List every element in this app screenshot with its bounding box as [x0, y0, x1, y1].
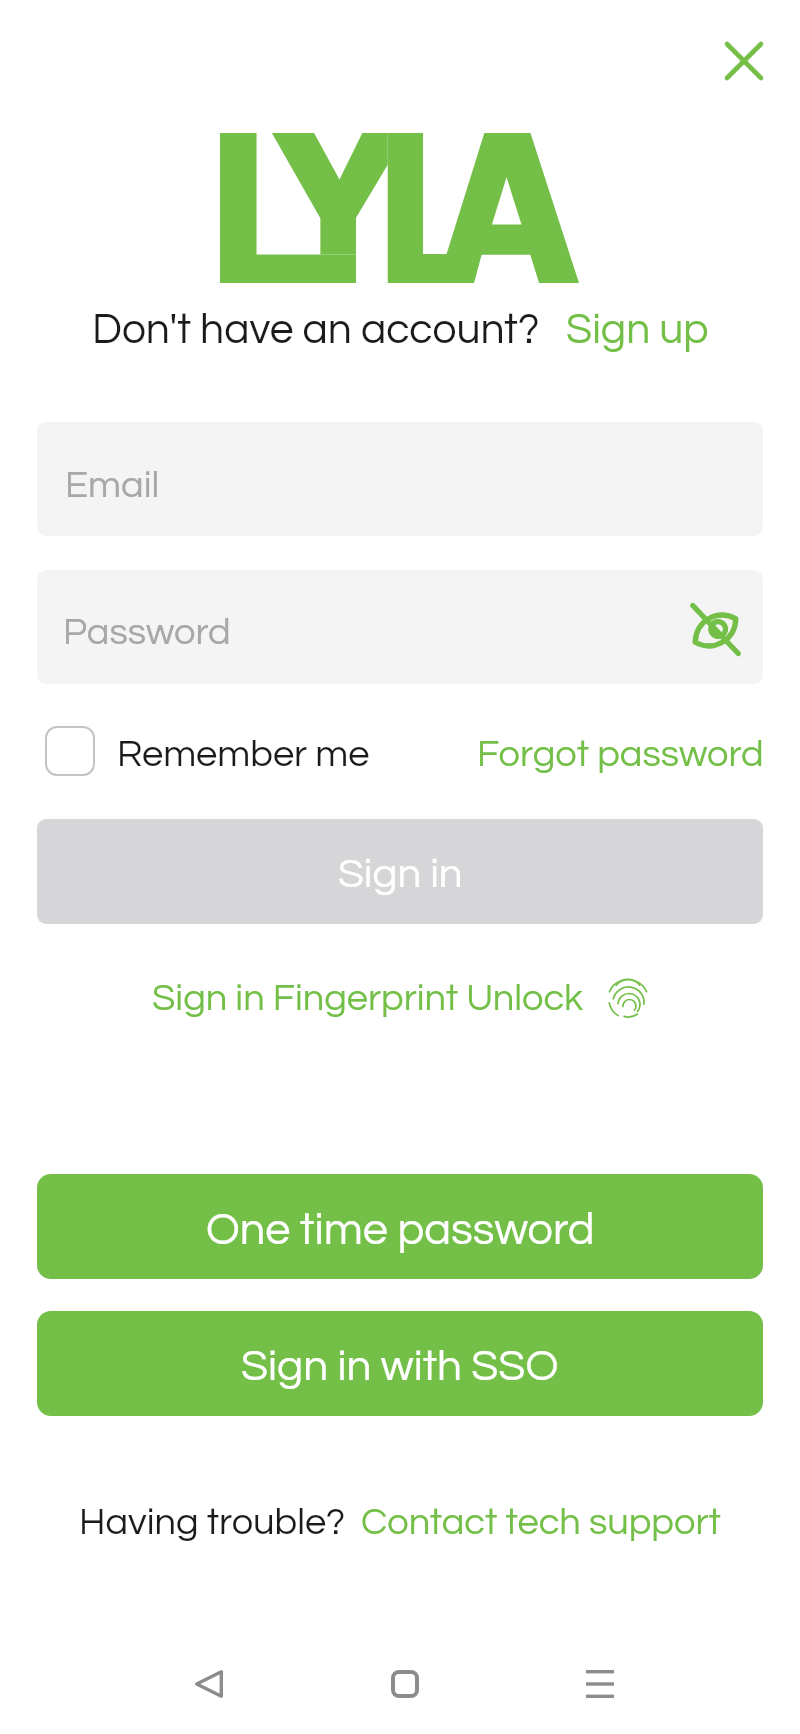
staticText: Email: [65, 466, 160, 505]
button[interactable]: Sign up: [566, 308, 709, 352]
button[interactable]: Back: [168, 1643, 249, 1724]
button[interactable]: Recent apps: [559, 1643, 640, 1724]
button[interactable]: Close: [704, 21, 784, 101]
button[interactable]: Email: [37, 422, 763, 536]
button[interactable]: Sign in with SSO: [37, 1311, 763, 1416]
staticText: Don't have an account?: [92, 308, 540, 352]
button[interactable]: Show password: [676, 590, 754, 668]
staticText: One time password: [206, 1207, 595, 1253]
button[interactable]: Contact tech support: [361, 1503, 721, 1542]
button[interactable]: Sign in: [37, 819, 763, 924]
staticText: Contact tech support: [361, 1503, 721, 1542]
staticText: Having trouble?: [79, 1503, 346, 1542]
staticText: Sign in with SSO: [241, 1344, 559, 1389]
staticText: Sign in: [338, 853, 463, 896]
button[interactable]: One time password: [37, 1174, 763, 1279]
button[interactable]: Home: [364, 1643, 445, 1724]
button[interactable]: Password: [37, 570, 763, 684]
button[interactable]: Forgot password: [477, 735, 764, 774]
staticText: Forgot password: [477, 735, 764, 774]
staticText: Sign up: [566, 308, 709, 352]
staticText: Sign in Fingerprint Unlock: [152, 979, 584, 1018]
button[interactable]: Sign in Fingerprint Unlock: [152, 975, 648, 1021]
button[interactable]: Remember me: [45, 726, 372, 776]
staticText: Remember me: [117, 735, 370, 774]
staticText: Password: [63, 613, 231, 652]
